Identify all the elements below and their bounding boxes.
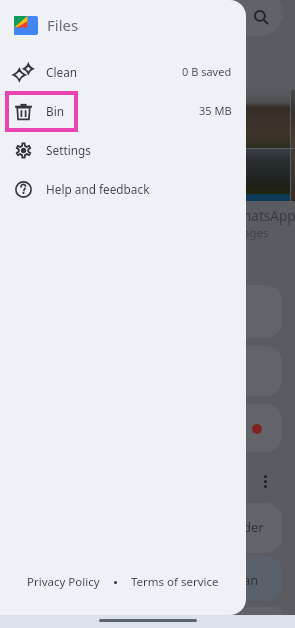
staticText: Clean [46,64,78,80]
staticText: der [243,518,264,536]
button[interactable]: Terms of service [131,574,219,590]
button[interactable]: Files [14,4,246,46]
staticText: hatsApp I [243,207,295,225]
button[interactable] [200,404,282,452]
button[interactable] [200,556,282,601]
button[interactable]: Bin [0,91,246,130]
staticText: 0 B saved [182,64,232,79]
staticText: Bin [46,103,65,119]
staticText: Settings [46,142,91,158]
button[interactable]: Search [200,0,283,36]
button[interactable]: Help and feedback [0,169,246,208]
staticText: Help and feedback [46,181,150,197]
button[interactable] [200,346,282,396]
staticText: ages [243,225,269,241]
button[interactable]: More options [264,475,267,488]
button[interactable]: Clean [0,52,246,91]
button[interactable]: Settings [0,130,246,169]
staticText: Files [47,15,79,35]
staticText: an [243,571,259,589]
button[interactable]: Privacy Policy [27,574,100,590]
button[interactable] [200,503,282,553]
staticText: 35 MB [199,103,232,118]
button[interactable] [200,285,282,338]
